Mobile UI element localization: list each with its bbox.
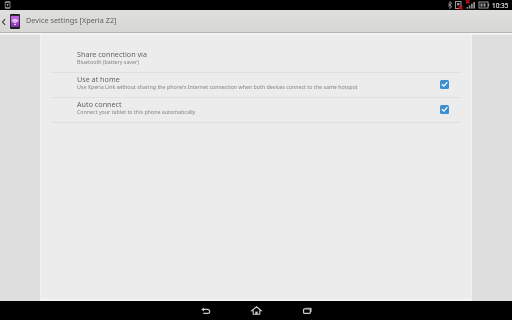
button[interactable]: Share connection via [40, 48, 472, 72]
button[interactable]: Back [196, 301, 215, 320]
button[interactable]: Use at home [440, 80, 449, 89]
button[interactable]: Home [247, 301, 266, 320]
staticText: Connect your tablet to this phone automa… [77, 108, 196, 115]
staticText: Share connection via [77, 49, 147, 59]
staticText: Use Xperia Link without sharing the phon… [77, 83, 358, 90]
staticText: 10:35 [492, 1, 509, 10]
button[interactable]: Auto connect [440, 105, 449, 114]
staticText: Bluetooth (battery saver) [77, 58, 139, 65]
button[interactable]: Auto connect [40, 98, 472, 122]
staticText: Use at home [77, 74, 120, 84]
staticText: Device settings [Xperia Z2] [26, 15, 117, 25]
button[interactable]: Recent apps [298, 301, 317, 320]
button[interactable]: Use at home [40, 73, 472, 97]
button[interactable]: Navigate up [0, 10, 24, 32]
staticText: Auto connect [77, 99, 122, 109]
